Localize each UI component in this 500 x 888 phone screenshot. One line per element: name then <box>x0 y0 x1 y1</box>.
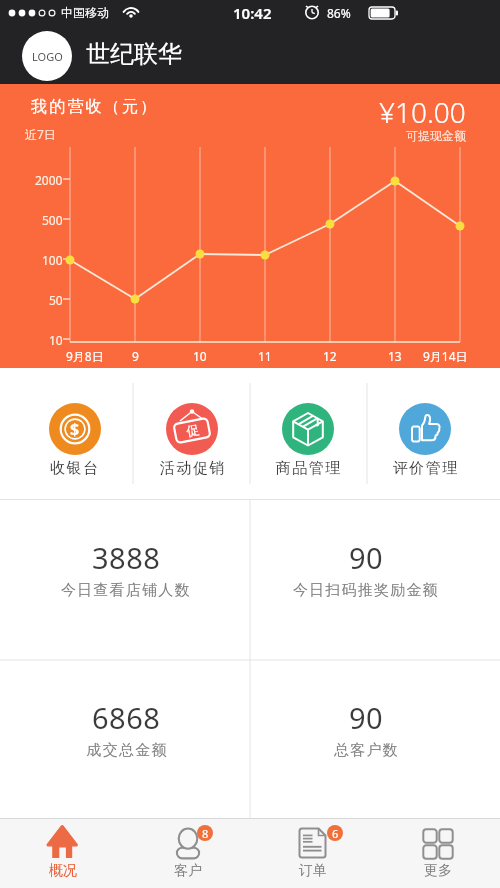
button[interactable]: 促 <box>132 368 252 500</box>
staticText: 500 <box>42 212 63 228</box>
staticText: 活动促销 <box>159 459 225 478</box>
staticText: 6 <box>332 826 339 841</box>
staticText: 更多 <box>424 862 452 880</box>
staticText: 促 <box>185 421 201 439</box>
staticText: 9 <box>132 348 139 364</box>
button[interactable]: 概况 <box>0 818 125 888</box>
button[interactable]: 90 <box>252 660 480 818</box>
staticText: ¥10.00 <box>379 93 466 131</box>
staticText: 中国移动 <box>61 5 109 20</box>
staticText: 86% <box>327 5 351 21</box>
staticText: 成交总金额 <box>86 741 167 760</box>
button[interactable]: 评价管理 <box>365 368 485 500</box>
staticText: 客户 <box>174 862 202 880</box>
button[interactable]: 订单 <box>250 818 375 888</box>
staticText: 可提现金额 <box>406 128 466 143</box>
staticText: 9月14日 <box>423 348 468 364</box>
staticText: 我的营收（元） <box>31 97 159 117</box>
staticText: 10 <box>49 332 63 348</box>
button[interactable]: 90 <box>252 500 480 658</box>
staticText: 商品管理 <box>275 459 341 478</box>
staticText: 总客户数 <box>334 741 399 760</box>
staticText: 收银台 <box>50 459 100 478</box>
staticText: 10 <box>193 348 207 364</box>
staticText: 3888 <box>92 538 161 577</box>
button[interactable]: 商品管理 <box>248 368 368 500</box>
button[interactable]: LOGO <box>22 31 72 81</box>
staticText: $ <box>70 418 80 440</box>
staticText: 订单 <box>299 862 327 880</box>
button[interactable]: 更多 <box>375 818 500 888</box>
staticText: 12 <box>323 348 337 364</box>
staticText: 9月8日 <box>66 348 104 364</box>
staticText: 今日查看店铺人数 <box>61 581 191 600</box>
staticText: 11 <box>258 348 272 364</box>
staticText: 今日扫码推奖励金额 <box>293 581 439 600</box>
staticText: 2000 <box>35 172 63 188</box>
staticText: 6868 <box>92 698 161 737</box>
button[interactable]: 客户 <box>125 818 250 888</box>
staticText: 90 <box>349 698 384 737</box>
staticText: 概况 <box>49 862 77 880</box>
staticText: 100 <box>42 252 63 268</box>
staticText: 世纪联华 <box>86 39 182 69</box>
staticText: 13 <box>388 348 402 364</box>
staticText: 评价管理 <box>392 459 458 478</box>
button[interactable]: 6868 <box>0 660 252 818</box>
staticText: 50 <box>49 292 63 308</box>
staticText: LOGO <box>32 49 63 64</box>
staticText: 90 <box>349 538 384 577</box>
button[interactable]: $ <box>15 368 135 500</box>
staticText: 8 <box>202 826 209 841</box>
staticText: 10:42 <box>233 3 272 23</box>
staticText: 近7日 <box>25 126 56 142</box>
button[interactable]: 3888 <box>0 500 252 658</box>
